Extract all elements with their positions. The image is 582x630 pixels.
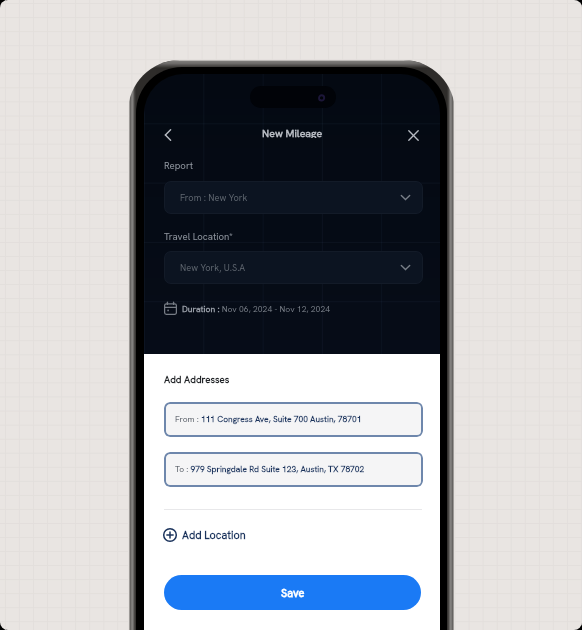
- staticText: New York, U.S.A: [180, 262, 246, 274]
- button[interactable]: New York, U.S.A: [164, 251, 423, 284]
- button[interactable]: Back: [156, 123, 180, 147]
- staticText: Save: [281, 586, 305, 600]
- button[interactable]: From : 111 Congress Ave, Suite 700 Austi…: [164, 402, 423, 437]
- staticText: From : New York: [180, 192, 248, 204]
- button[interactable]: From : New York: [164, 181, 423, 214]
- staticText: Add Location: [182, 528, 246, 542]
- staticText: Add Addresses: [164, 373, 230, 386]
- staticText: Report: [164, 159, 194, 172]
- button[interactable]: Add Location: [163, 524, 246, 546]
- button[interactable]: Close: [401, 123, 425, 147]
- staticText: To : 979 Springdale Rd Suite 123, Austin…: [175, 464, 365, 475]
- staticText: New Mileage: [262, 126, 323, 138]
- staticText: Travel Location*: [164, 230, 233, 243]
- button[interactable]: To : 979 Springdale Rd Suite 123, Austin…: [164, 452, 423, 487]
- staticText: Duration : Nov 06, 2024 - Nov 12, 2024: [182, 303, 331, 314]
- button[interactable]: Save: [164, 575, 421, 610]
- staticText: From : 111 Congress Ave, Suite 700 Austi…: [175, 414, 362, 425]
